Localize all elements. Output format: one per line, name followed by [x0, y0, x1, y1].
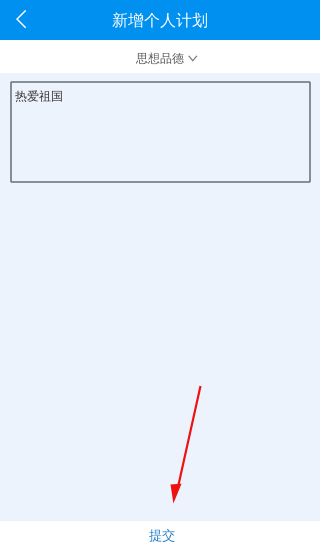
button[interactable]: 思想品德	[0, 40, 320, 73]
staticText: 新增个人计划	[112, 11, 208, 30]
button[interactable]: Back	[0, 0, 40, 40]
button[interactable]: 热爱祖国	[11, 82, 310, 182]
button[interactable]: 提交	[0, 521, 320, 550]
staticText: 思想品德	[136, 51, 184, 66]
staticText: 热爱祖国	[15, 89, 63, 104]
staticText: 提交	[149, 527, 175, 544]
